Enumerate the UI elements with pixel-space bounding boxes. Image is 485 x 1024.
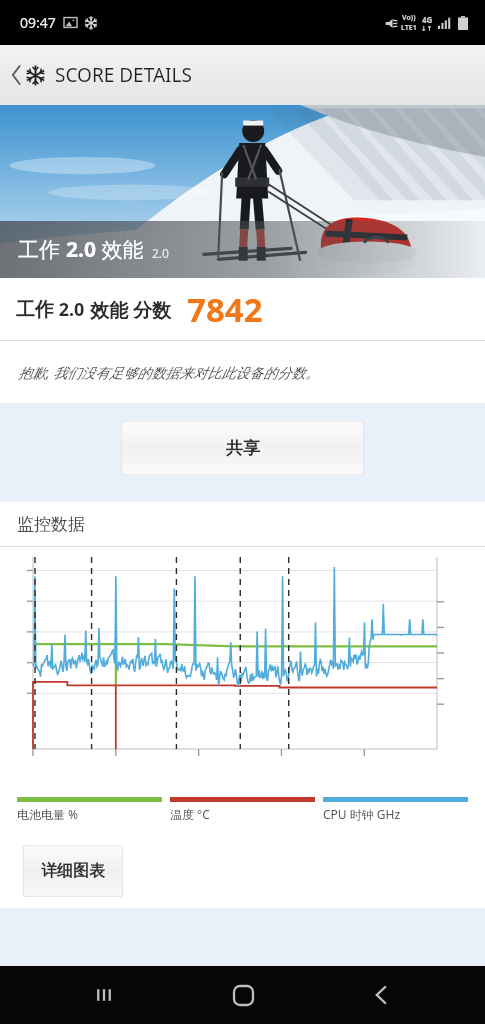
staticText: 温度 °C: [170, 806, 210, 822]
staticText: ↓↑: [421, 25, 433, 33]
staticText: 详细图表: [41, 861, 105, 881]
staticText: 电池电量 %: [17, 806, 79, 822]
button[interactable]: 详细图表: [23, 845, 123, 897]
staticText: 监控数据: [17, 514, 85, 535]
staticText: 4G: [422, 14, 433, 25]
staticText: 效能 分数: [90, 297, 171, 323]
staticText: SCORE DETAILS: [55, 62, 192, 88]
staticText: 2.0: [66, 235, 96, 264]
staticText: 09:47: [20, 13, 56, 32]
staticText: Vo)): [402, 13, 416, 23]
button[interactable]: Home: [208, 966, 278, 1024]
staticText: 7842: [187, 287, 263, 332]
button[interactable]: Recent apps: [69, 966, 139, 1024]
staticText: CPU 时钟 GHz: [323, 806, 401, 822]
button[interactable]: Back: [8, 56, 196, 94]
button[interactable]: 共享: [121, 421, 364, 475]
staticText: LTE1: [401, 23, 417, 33]
staticText: 2.0: [54, 297, 90, 322]
staticText: 效能: [96, 235, 144, 264]
button[interactable]: Back: [346, 966, 416, 1024]
staticText: 抱歉, 我们没有足够的数据来对比此设备的分数。: [18, 363, 320, 382]
staticText: 工作: [18, 235, 66, 264]
staticText: 工作: [16, 298, 54, 322]
staticText: 2.0: [152, 245, 169, 261]
staticText: 共享: [226, 438, 260, 459]
